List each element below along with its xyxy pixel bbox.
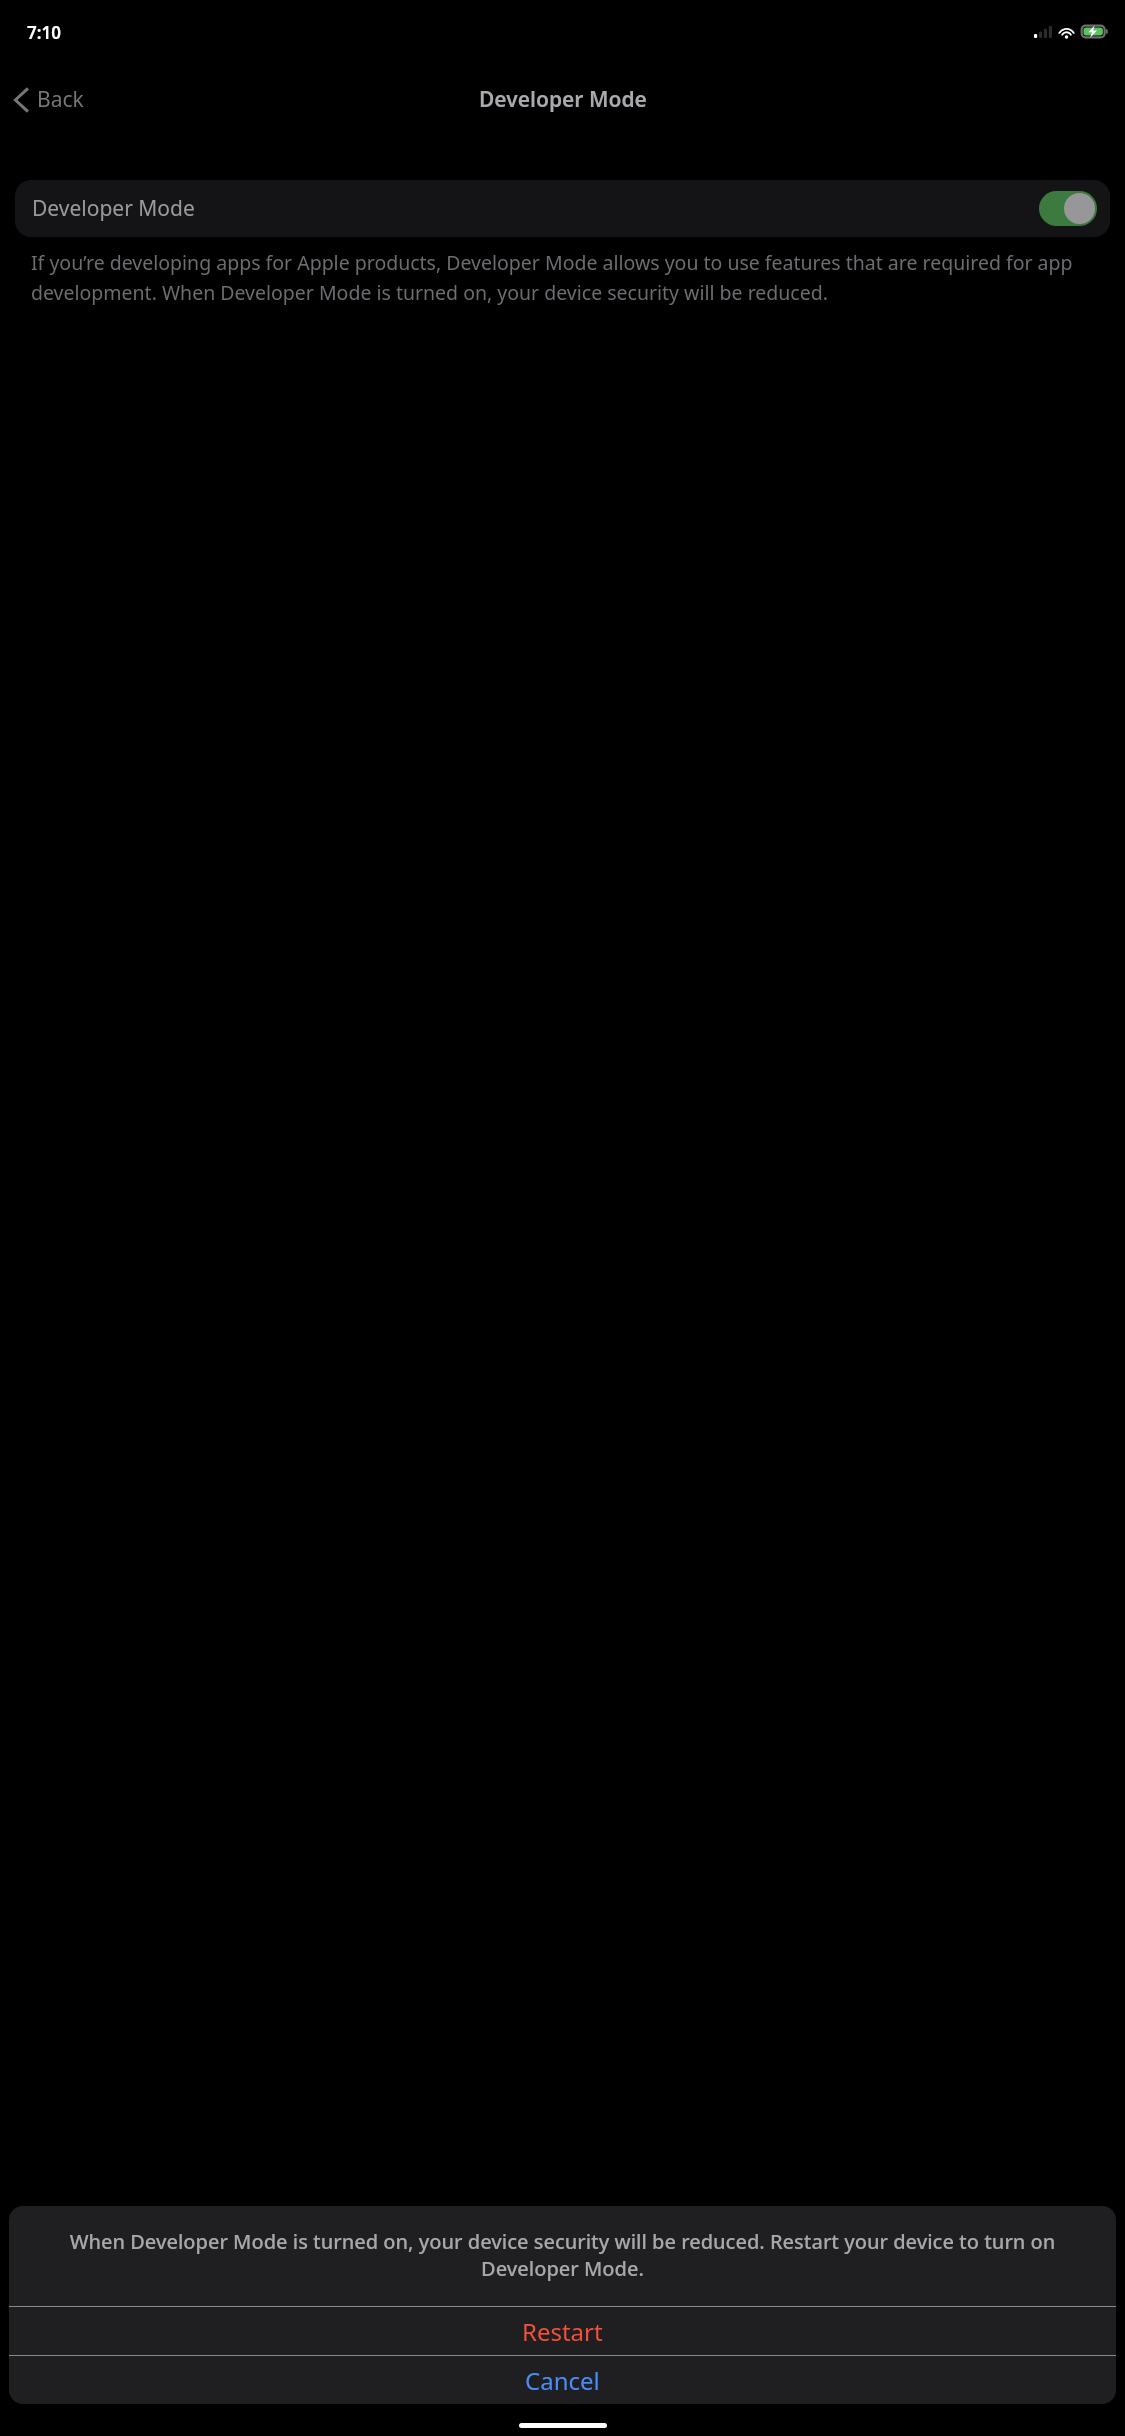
staticText: Back	[37, 85, 84, 114]
staticText: When Developer Mode is turned on, your d…	[27, 2228, 1098, 2282]
staticText: Developer Mode	[479, 85, 647, 114]
staticText: 7:10	[27, 21, 61, 44]
staticText: Cancel	[525, 2364, 600, 2397]
staticText: Restart	[522, 2315, 603, 2348]
button[interactable]: Back	[0, 79, 96, 120]
button[interactable]: Cancel	[9, 2356, 1116, 2404]
button[interactable]: Developer Mode toggle, on	[1039, 191, 1097, 226]
button[interactable]: Restart	[9, 2307, 1116, 2355]
button[interactable]: Developer Mode	[15, 180, 1110, 237]
staticText: If you’re developing apps for Apple prod…	[31, 249, 1095, 306]
staticText: Developer Mode	[32, 194, 195, 223]
